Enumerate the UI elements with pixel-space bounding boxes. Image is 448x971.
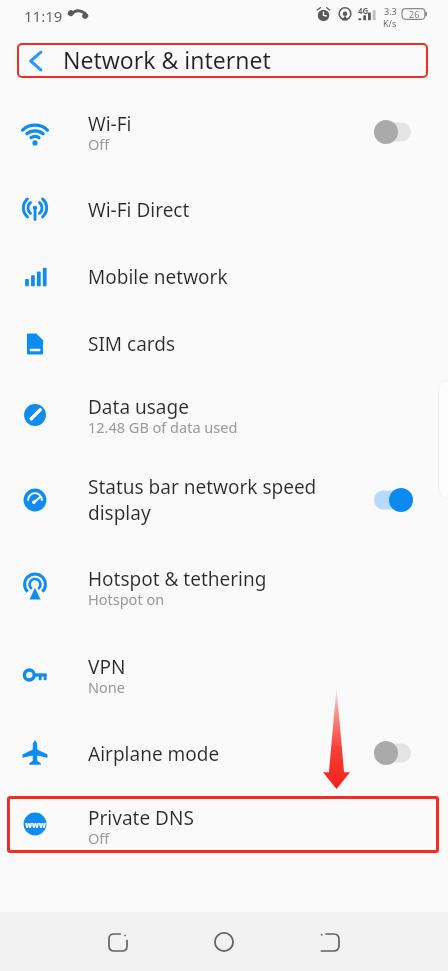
button[interactable]: Hotspot & tethering (0, 557, 448, 621)
button[interactable]: Wi-Fi (0, 102, 448, 166)
staticText: Off (88, 828, 110, 848)
button[interactable]: Airplane mode (0, 722, 448, 786)
staticText: Wi-Fi Direct (88, 197, 190, 223)
staticText: Private DNS (88, 805, 194, 831)
button[interactable]: www (0, 796, 448, 860)
button[interactable]: Turn on (374, 739, 416, 767)
staticText: 26 (409, 8, 420, 20)
staticText: SIM cards (88, 331, 176, 357)
staticText: Network & internet (63, 44, 271, 75)
staticText: None (88, 677, 125, 697)
staticText: Hotspot on (88, 589, 165, 609)
button[interactable]: Recent apps (94, 918, 142, 966)
button[interactable]: Mobile network (0, 245, 448, 309)
staticText: VPN (88, 654, 126, 680)
staticText: Status bar network speed display (88, 474, 317, 526)
button[interactable]: SIM cards (0, 312, 448, 376)
button[interactable]: Status bar network speed display (0, 468, 448, 532)
staticText: Off (88, 134, 110, 154)
staticText: Hotspot & tethering (88, 566, 267, 592)
staticText: Wi-Fi (88, 111, 132, 137)
staticText: 12.48 GB of data used (88, 417, 238, 437)
staticText: Data usage (88, 394, 189, 420)
staticText: 4G (358, 5, 369, 16)
button[interactable]: Turn on (374, 118, 416, 146)
button[interactable]: Back (17, 43, 107, 78)
button[interactable]: VPN (0, 645, 448, 709)
button[interactable]: Back (306, 918, 354, 966)
staticText: 11:19 (24, 6, 63, 26)
staticText: Airplane mode (88, 741, 220, 767)
staticText: www (25, 819, 46, 830)
button[interactable]: Data usage (0, 385, 448, 449)
button[interactable]: Wi-Fi Direct (0, 178, 448, 242)
staticText: Mobile network (88, 264, 228, 290)
staticText: K/s (383, 17, 397, 29)
button[interactable]: Home (200, 918, 248, 966)
staticText: 3.3 (384, 5, 397, 17)
button[interactable]: Turn off (374, 486, 416, 514)
